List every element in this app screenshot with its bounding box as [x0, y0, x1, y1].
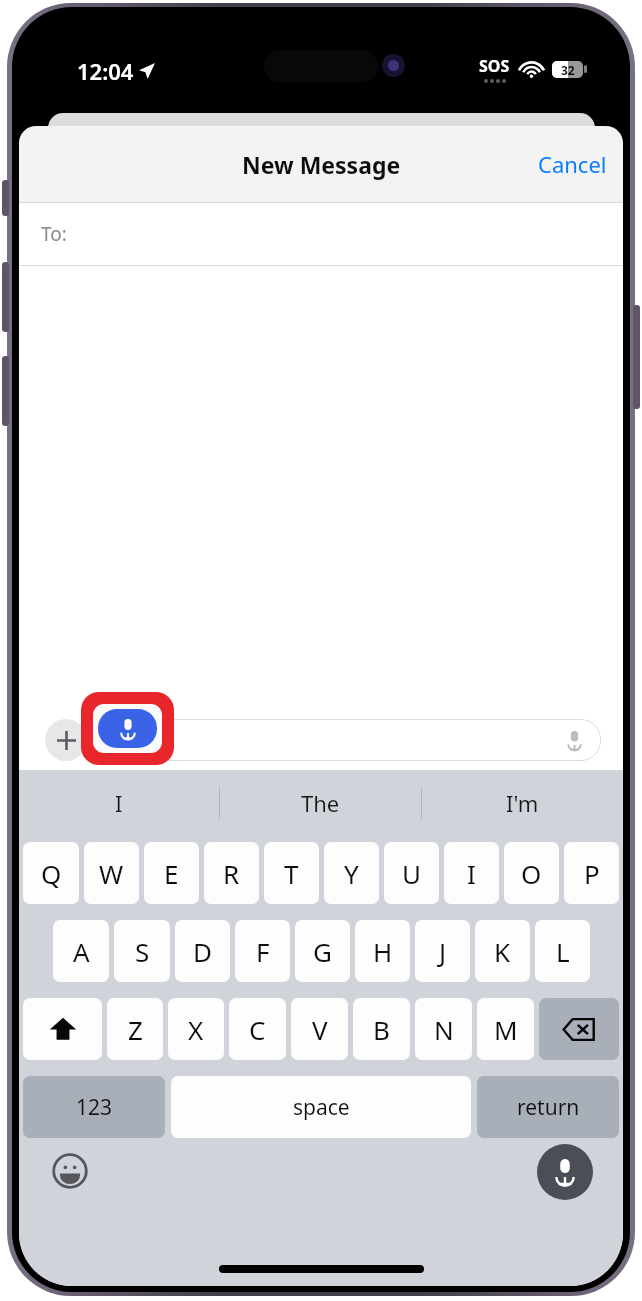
button[interactable]: W: [84, 842, 139, 904]
staticText: Q: [41, 856, 62, 891]
button[interactable]: B: [353, 998, 410, 1060]
button[interactable]: G: [295, 920, 350, 982]
button[interactable]: Z: [107, 998, 163, 1060]
button[interactable]: X: [168, 998, 224, 1060]
staticText: 12:04: [77, 56, 134, 86]
staticText: L: [556, 934, 570, 969]
button[interactable]: C: [229, 998, 286, 1060]
button[interactable]: S: [114, 920, 170, 982]
staticText: I: [115, 788, 123, 818]
staticText: W: [99, 856, 124, 891]
button[interactable]: O: [504, 842, 559, 904]
button[interactable]: return: [477, 1076, 619, 1138]
staticText: 32: [561, 62, 575, 78]
button[interactable]: To:: [19, 203, 623, 265]
staticText: G: [313, 934, 332, 969]
button[interactable]: 123: [23, 1076, 165, 1138]
staticText: 123: [76, 1093, 113, 1122]
button[interactable]: The: [220, 770, 421, 835]
staticText: I: [467, 856, 476, 891]
button[interactable]: space: [171, 1076, 471, 1138]
button[interactable]: P: [564, 842, 619, 904]
staticText: space: [293, 1093, 350, 1122]
button[interactable]: F: [235, 920, 290, 982]
staticText: E: [164, 856, 179, 891]
button[interactable]: Add attachment: [45, 719, 87, 761]
staticText: R: [223, 856, 240, 891]
staticText: H: [373, 934, 393, 969]
button[interactable]: N: [415, 998, 472, 1060]
button[interactable]: I'm: [422, 770, 623, 835]
staticText: N: [434, 1012, 454, 1047]
staticText: X: [188, 1012, 204, 1047]
button[interactable]: M: [477, 998, 534, 1060]
button[interactable]: D: [175, 920, 230, 982]
button[interactable]: L: [535, 920, 590, 982]
button[interactable]: Dictate message: [98, 709, 157, 748]
button[interactable]: R: [204, 842, 259, 904]
staticText: S: [135, 934, 150, 969]
staticText: I'm: [506, 788, 539, 818]
staticText: U: [402, 856, 422, 891]
staticText: SOS: [479, 55, 510, 77]
button[interactable]: V: [291, 998, 348, 1060]
button[interactable]: K: [475, 920, 530, 982]
button[interactable]: T: [264, 842, 319, 904]
staticText: New Message: [242, 149, 401, 180]
staticText: F: [256, 934, 270, 969]
button[interactable]: Y: [324, 842, 379, 904]
button[interactable]: U: [384, 842, 439, 904]
staticText: M: [494, 1012, 518, 1047]
button[interactable]: [109, 719, 601, 761]
staticText: A: [73, 934, 90, 969]
button[interactable]: Backspace: [539, 998, 619, 1060]
button[interactable]: E: [144, 842, 199, 904]
staticText: The: [301, 788, 340, 818]
staticText: Z: [128, 1012, 143, 1047]
staticText: T: [284, 856, 299, 891]
staticText: To:: [41, 221, 67, 247]
button[interactable]: H: [355, 920, 410, 982]
staticText: Cancel: [538, 149, 607, 179]
button[interactable]: Emoji: [47, 1148, 93, 1194]
staticText: O: [521, 856, 542, 891]
staticText: V: [312, 1012, 328, 1047]
staticText: J: [439, 934, 447, 969]
staticText: K: [494, 934, 511, 969]
button[interactable]: J: [415, 920, 470, 982]
button[interactable]: Q: [23, 842, 79, 904]
button[interactable]: Cancel: [522, 137, 623, 191]
staticText: return: [517, 1093, 580, 1122]
button[interactable]: A: [53, 920, 109, 982]
button[interactable]: I: [444, 842, 499, 904]
button[interactable]: I: [19, 770, 219, 835]
staticText: B: [373, 1012, 390, 1047]
staticText: Y: [344, 856, 359, 891]
staticText: C: [249, 1012, 266, 1047]
button[interactable]: Dictation: [537, 1144, 593, 1200]
staticText: P: [584, 856, 600, 891]
staticText: D: [193, 934, 212, 969]
button[interactable]: Shift: [23, 998, 102, 1060]
